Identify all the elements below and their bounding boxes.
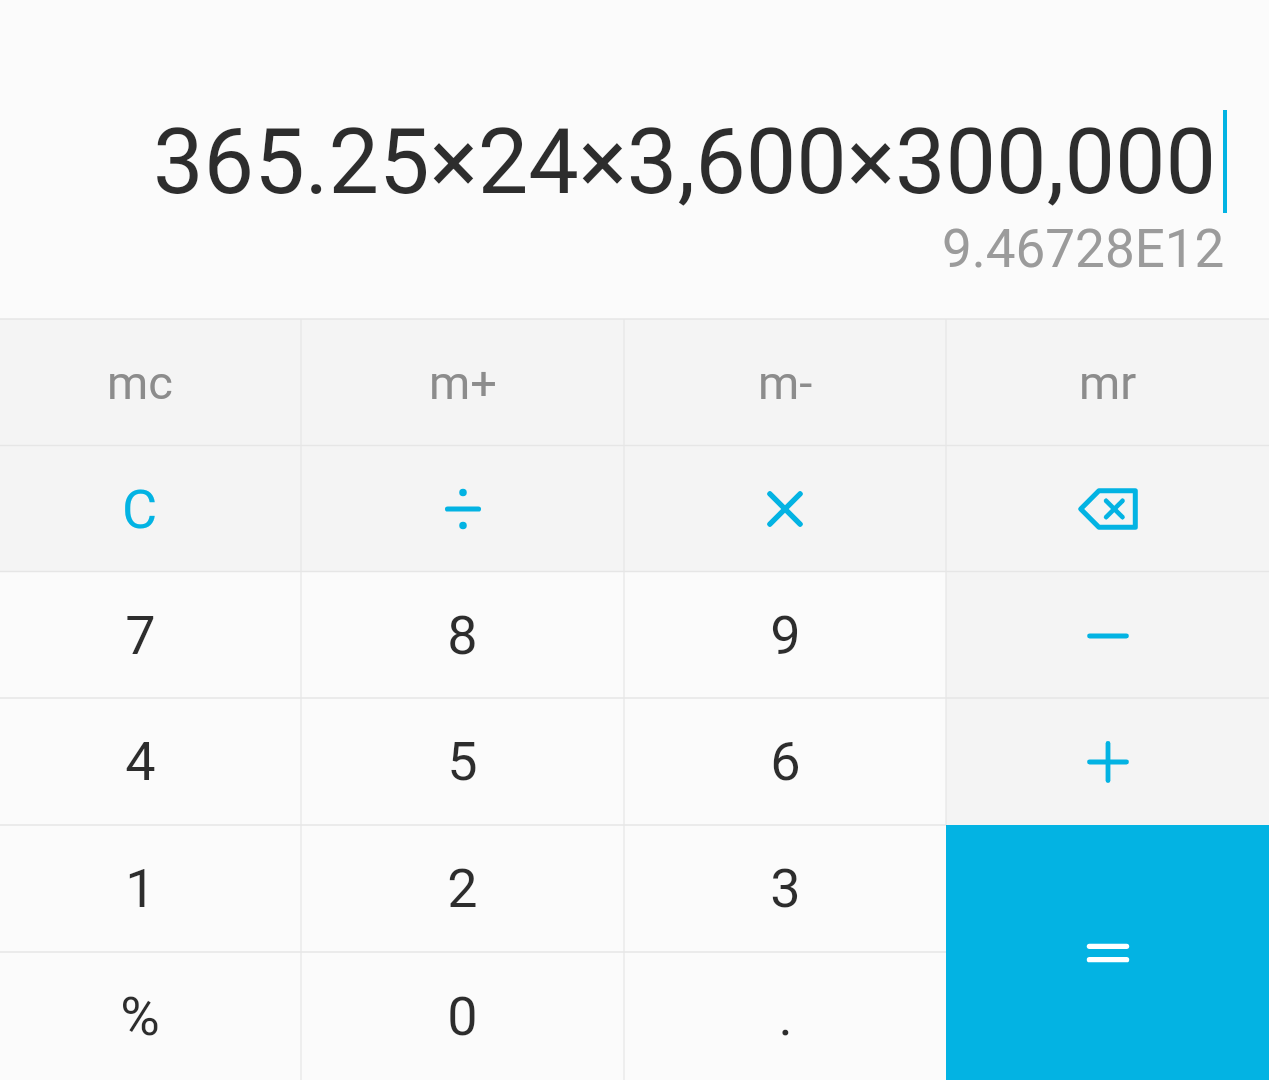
- staticText: 9: [770, 604, 801, 667]
- staticText: mc: [107, 355, 173, 410]
- button[interactable]: 2: [301, 825, 624, 952]
- button[interactable]: 7: [0, 572, 301, 699]
- button[interactable]: 6: [624, 698, 946, 825]
- button[interactable]: .: [624, 952, 946, 1080]
- button[interactable]: equals: [946, 825, 1269, 1080]
- button[interactable]: 5: [301, 698, 624, 825]
- staticText: m+: [429, 355, 497, 410]
- button[interactable]: memory clear: [0, 319, 301, 446]
- staticText: mr: [1079, 355, 1137, 410]
- button[interactable]: multiply: [624, 446, 946, 572]
- button[interactable]: memory recall: [946, 319, 1269, 446]
- staticText: C: [122, 478, 158, 541]
- staticText: m-: [758, 355, 813, 410]
- staticText: 9.46728E12: [942, 218, 1225, 280]
- staticText: 6: [770, 730, 801, 793]
- staticText: 2: [447, 857, 478, 920]
- button[interactable]: %: [0, 952, 301, 1080]
- button[interactable]: 1: [0, 825, 301, 952]
- staticText: 8: [447, 604, 478, 667]
- button[interactable]: memory add: [301, 319, 624, 446]
- button[interactable]: 9: [624, 572, 946, 699]
- button[interactable]: 0: [301, 952, 624, 1080]
- button[interactable]: delete: [946, 446, 1269, 572]
- button[interactable]: clear: [0, 446, 301, 572]
- staticText: 7: [125, 604, 156, 667]
- staticText: 1: [125, 857, 156, 920]
- button[interactable]: plus: [946, 698, 1269, 825]
- staticText: 5: [447, 730, 478, 793]
- button[interactable]: 3: [624, 825, 946, 952]
- staticText: 3: [770, 857, 801, 920]
- staticText: %: [120, 985, 160, 1048]
- staticText: 365.25×24×3,600×300,000: [153, 110, 1217, 215]
- staticText: 0: [447, 985, 478, 1048]
- button[interactable]: minus: [946, 572, 1269, 699]
- button[interactable]: memory subtract: [624, 319, 946, 446]
- button[interactable]: 8: [301, 572, 624, 699]
- button[interactable]: divide: [301, 446, 624, 572]
- staticText: .: [778, 985, 793, 1048]
- button[interactable]: 4: [0, 698, 301, 825]
- staticText: 4: [125, 730, 156, 793]
